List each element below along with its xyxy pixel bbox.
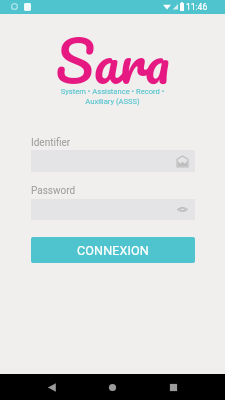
- button[interactable]: Home: [100, 375, 125, 400]
- staticText: 11:46: [186, 2, 208, 12]
- staticText: System • Assistance • Record • Auxiliary…: [0, 87, 225, 106]
- button[interactable]: Email: [31, 150, 195, 172]
- other: Email: [177, 156, 188, 167]
- button[interactable]: Show password: [31, 199, 195, 220]
- staticText: CONNEXION: [77, 243, 149, 258]
- other: Show password: [177, 204, 188, 215]
- staticText: Sara: [0, 12, 225, 109]
- button[interactable]: Back: [39, 375, 64, 400]
- button[interactable]: CONNEXION: [31, 237, 195, 263]
- staticText: Identifier: [31, 137, 71, 149]
- staticText: Password: [31, 185, 76, 197]
- button[interactable]: Recent apps: [161, 375, 186, 400]
